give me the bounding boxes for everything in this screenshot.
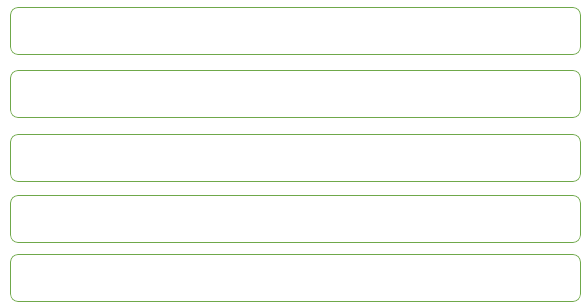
button[interactable] bbox=[10, 195, 581, 243]
button[interactable] bbox=[10, 7, 581, 55]
button[interactable] bbox=[10, 134, 581, 182]
button[interactable] bbox=[10, 70, 581, 118]
button[interactable] bbox=[10, 254, 581, 302]
